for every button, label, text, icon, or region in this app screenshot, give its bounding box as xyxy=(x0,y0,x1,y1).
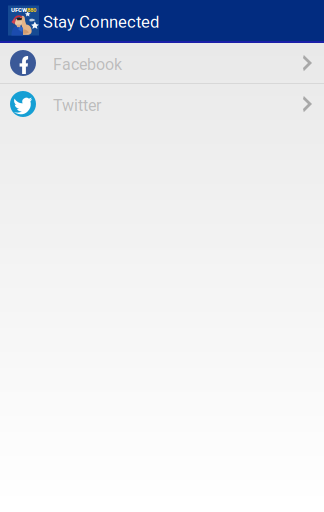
staticText: UFCW xyxy=(11,6,27,13)
staticText: Twitter xyxy=(53,96,101,115)
button[interactable]: Facebook xyxy=(0,43,324,83)
button[interactable]: Twitter xyxy=(0,84,324,124)
staticText: 880 xyxy=(27,6,36,13)
staticText: Stay Connected xyxy=(43,12,159,32)
staticText: Facebook xyxy=(53,55,122,74)
